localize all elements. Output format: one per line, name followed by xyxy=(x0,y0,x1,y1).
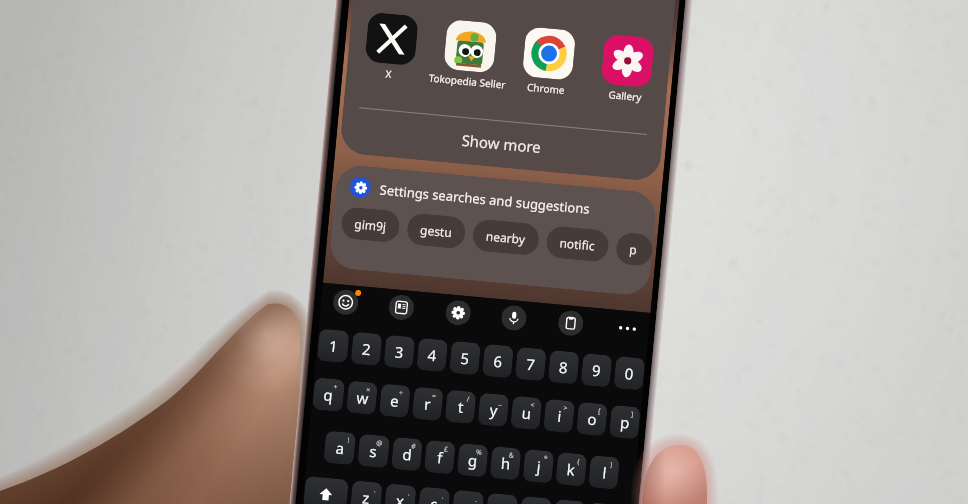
staticText: nearby xyxy=(485,227,526,247)
button[interactable]: k xyxy=(555,452,587,487)
staticText: h xyxy=(500,453,512,474)
button[interactable]: t xyxy=(445,390,476,424)
button[interactable]: pr xyxy=(615,232,654,267)
button[interactable]: 1 xyxy=(317,328,349,363)
staticText: f xyxy=(436,447,444,467)
staticText: & xyxy=(508,451,515,461)
staticText: / xyxy=(466,394,470,405)
button[interactable]: f xyxy=(424,440,456,474)
button[interactable]: nearby xyxy=(471,218,540,256)
button[interactable]: j xyxy=(522,449,554,483)
button[interactable]: n xyxy=(519,496,552,504)
button[interactable]: 5 xyxy=(449,341,481,375)
button[interactable]: 7 xyxy=(515,347,547,381)
button[interactable]: q xyxy=(312,377,345,412)
button[interactable]: Backspace xyxy=(587,502,632,504)
staticText: 8 xyxy=(558,357,569,378)
button[interactable]: 0 xyxy=(613,356,645,391)
button[interactable]: 6 xyxy=(482,344,514,378)
button[interactable]: e xyxy=(379,383,411,418)
staticText: j xyxy=(536,456,542,476)
button[interactable]: g xyxy=(457,443,488,477)
staticText: £ xyxy=(444,445,449,455)
button[interactable]: Show more xyxy=(340,113,662,173)
staticText: 3 xyxy=(394,342,405,362)
button[interactable]: gim9j xyxy=(340,206,401,243)
staticText: p xyxy=(619,412,631,432)
staticText: 9 xyxy=(591,360,602,381)
button[interactable]: x xyxy=(384,483,416,504)
staticText: gestu xyxy=(419,221,453,240)
button[interactable]: Voice input xyxy=(500,304,528,331)
staticText: g xyxy=(467,450,479,471)
staticText: ) xyxy=(610,460,614,470)
button[interactable]: 8 xyxy=(548,350,579,384)
staticText: 0 xyxy=(624,363,635,384)
button[interactable]: w xyxy=(346,380,378,415)
button[interactable]: y xyxy=(477,393,509,427)
staticText: # xyxy=(411,441,417,452)
button[interactable]: gestu xyxy=(406,212,466,249)
button[interactable]: l xyxy=(588,455,620,490)
staticText: q xyxy=(323,384,334,405)
staticText: e xyxy=(389,390,400,411)
staticText: Show more xyxy=(461,130,542,157)
staticText: * xyxy=(543,454,548,464)
button[interactable]: r xyxy=(412,387,444,421)
staticText: s xyxy=(369,441,378,461)
staticText: d xyxy=(401,444,413,465)
button[interactable]: X xyxy=(353,11,431,67)
button[interactable]: b xyxy=(485,493,518,504)
staticText: 2 xyxy=(361,339,372,359)
button[interactable]: 4 xyxy=(416,338,448,372)
button[interactable]: 2 xyxy=(351,332,382,366)
staticText: _ xyxy=(498,397,503,408)
button[interactable]: v xyxy=(451,490,484,504)
button[interactable]: Chrome xyxy=(510,25,588,82)
button[interactable]: Emoji xyxy=(332,289,359,316)
staticText: [ xyxy=(598,407,602,417)
staticText: Chrome xyxy=(526,80,565,97)
button[interactable]: Text extraction xyxy=(388,294,415,321)
staticText: ! xyxy=(347,436,350,446)
button[interactable]: m xyxy=(553,499,586,504)
button[interactable]: s xyxy=(357,434,390,468)
staticText: < xyxy=(530,400,536,411)
button[interactable]: Clipboard xyxy=(557,310,584,337)
staticText: . xyxy=(441,491,444,502)
staticText: Tokopedia Seller xyxy=(428,70,507,92)
button[interactable]: 3 xyxy=(383,335,415,369)
button[interactable]: Tokopedia Seller xyxy=(431,18,509,74)
button[interactable]: More options xyxy=(613,315,641,342)
staticText: w xyxy=(356,387,369,408)
staticText: o xyxy=(587,409,598,429)
button[interactable]: c xyxy=(417,486,450,504)
button[interactable]: Gallery xyxy=(589,32,667,89)
staticText: = xyxy=(431,391,437,402)
button[interactable]: notific xyxy=(545,225,610,263)
staticText: 1 xyxy=(328,335,339,356)
staticText: 4 xyxy=(427,345,438,365)
button[interactable]: h xyxy=(490,446,521,480)
button[interactable]: p xyxy=(609,405,641,439)
staticText: 5 xyxy=(460,348,470,368)
button[interactable]: u xyxy=(510,396,542,430)
button[interactable]: i xyxy=(543,399,575,433)
staticText: + xyxy=(333,382,339,392)
staticText: @ xyxy=(376,438,384,449)
button[interactable]: d xyxy=(391,437,423,471)
button[interactable]: o xyxy=(576,402,608,436)
button[interactable]: z xyxy=(350,480,383,504)
button[interactable]: Shift xyxy=(303,476,349,504)
button[interactable]: 9 xyxy=(581,353,612,387)
staticText: x xyxy=(395,490,405,504)
staticText: t xyxy=(457,397,465,417)
staticText: notific xyxy=(559,234,596,254)
staticText: Gallery xyxy=(608,87,642,104)
button[interactable]: Keyboard settings xyxy=(445,299,472,326)
staticText: . xyxy=(475,495,478,504)
button[interactable]: a xyxy=(323,431,356,465)
